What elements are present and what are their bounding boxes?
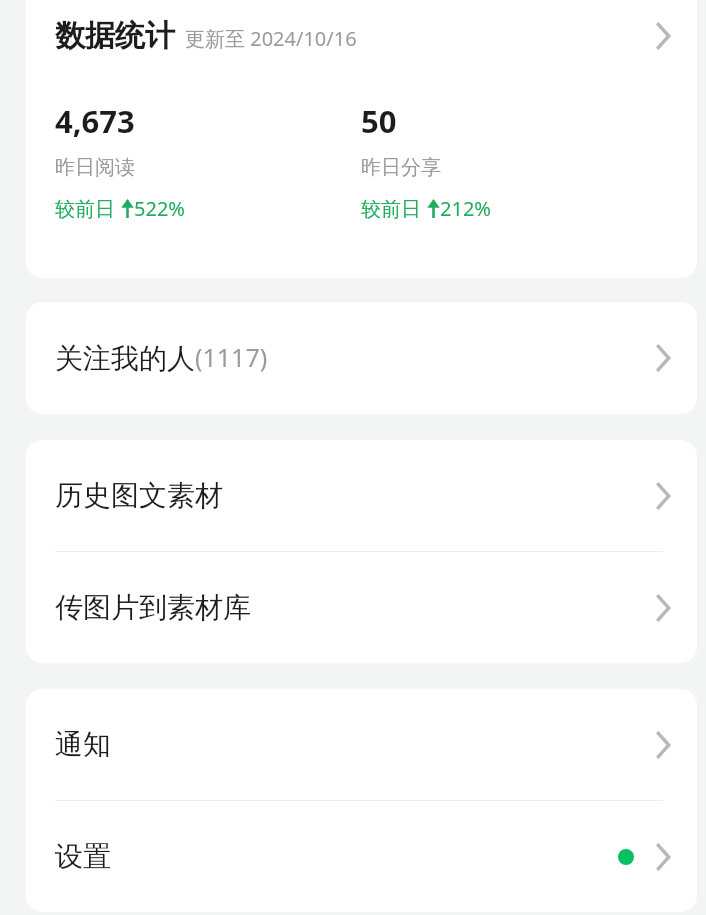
other: 设置 [654,841,672,873]
staticText: 较前日 [361,195,427,222]
staticText: 4,673 [55,100,135,142]
staticText: 昨日阅读 [55,155,135,180]
other: 历史图文素材 [654,480,672,512]
staticText: 关注我的人 [55,341,195,376]
button[interactable]: 历史图文素材 [26,440,697,551]
staticText: 昨日分享 [361,155,441,180]
staticText: 更新至 2024/10/16 [185,25,357,52]
other: 通知 [654,729,672,761]
button[interactable]: 设置 [26,801,697,912]
other: 传图片到素材库 [654,592,672,624]
staticText: 212% [440,195,491,222]
button[interactable]: 传图片到素材库 [26,552,697,663]
staticText: 传图片到素材库 [55,590,251,625]
staticText: 历史图文素材 [55,478,223,513]
other: 数据统计详情 [654,20,672,52]
button[interactable]: 关注我的人 [26,302,697,414]
staticText: 较前日 [55,195,121,222]
staticText: 522% [134,195,185,222]
button[interactable]: 通知 [26,689,697,800]
staticText: 设置 [55,839,111,874]
staticText: 通知 [55,727,111,762]
other: 关注我的人 [654,342,672,374]
staticText: 数据统计 [55,17,175,55]
staticText: 50 [361,100,397,142]
button[interactable]: 数据统计 [26,0,697,72]
staticText: (1117) [195,340,268,374]
